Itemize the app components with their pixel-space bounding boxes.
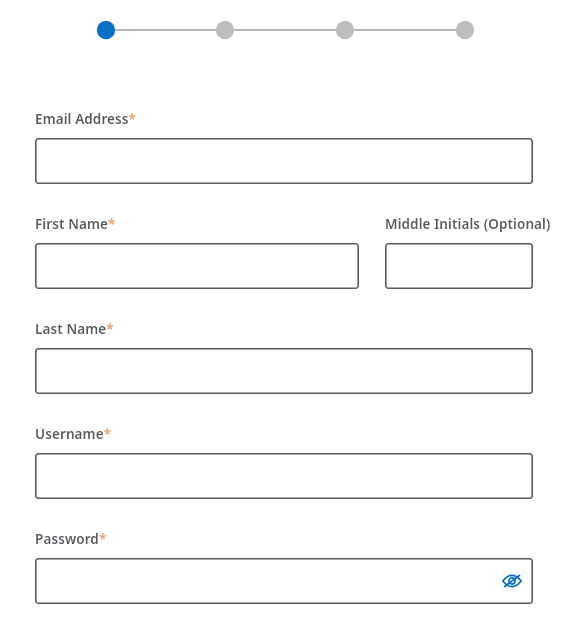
button[interactable]: Middle Initials bbox=[385, 243, 533, 289]
button[interactable]: Username bbox=[35, 453, 533, 499]
staticText: Email Address* bbox=[35, 110, 137, 128]
button[interactable]: Password bbox=[35, 558, 533, 604]
button[interactable]: Email Address bbox=[35, 138, 533, 184]
staticText: Middle Initials (Optional) bbox=[385, 215, 551, 233]
staticText: First Name* bbox=[35, 215, 116, 233]
button[interactable]: First Name bbox=[35, 243, 359, 289]
staticText: Last Name* bbox=[35, 320, 114, 338]
button[interactable]: Show password bbox=[500, 569, 524, 593]
staticText: Username* bbox=[35, 425, 112, 443]
button[interactable]: Last Name bbox=[35, 348, 533, 394]
staticText: Password* bbox=[35, 530, 107, 548]
